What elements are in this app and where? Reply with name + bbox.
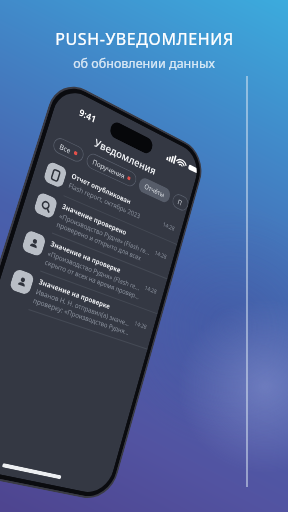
button[interactable]: Notification type xyxy=(31,151,185,244)
staticText: проверено и открыто для всех xyxy=(55,220,142,262)
staticText: Все xyxy=(58,141,73,156)
staticText: Иванов Н. Н. отправил(а) значение на xyxy=(35,287,133,329)
staticText: Значение на проверке xyxy=(49,239,122,276)
staticText: Отчет опубликован xyxy=(70,171,132,207)
staticText: 14:28 xyxy=(154,249,168,261)
staticText: Значение проверено xyxy=(61,202,128,238)
staticText: Предприятия xyxy=(177,197,184,208)
button[interactable]: Поручения xyxy=(85,151,138,189)
other: Notification type xyxy=(15,275,30,290)
staticText: «Производство Рудня» (Flash report) xyxy=(58,211,153,258)
staticText: об обновлении данных xyxy=(73,55,215,72)
staticText: Уведомления xyxy=(93,135,158,178)
staticText: 14:28 xyxy=(162,220,176,233)
staticText: Значение на проверке xyxy=(37,277,111,312)
other: Notification type xyxy=(39,198,53,214)
staticText: 14:28 xyxy=(133,319,148,331)
staticText: скрыто от всех на время проверки xyxy=(44,257,141,301)
staticText: «Производство Рудня» (Flash report) xyxy=(46,249,143,293)
other: Notification type xyxy=(48,167,63,183)
button[interactable]: Notification type xyxy=(19,182,177,278)
staticText: 9:41 xyxy=(78,106,97,126)
button[interactable]: Предприятия xyxy=(171,192,190,213)
staticText: Flash report, октябрь 2023 xyxy=(67,181,141,220)
button[interactable]: Notification type xyxy=(7,220,167,313)
staticText: Поручения xyxy=(91,157,126,181)
button[interactable]: Notification type xyxy=(0,259,157,349)
other: Notification type xyxy=(27,236,42,252)
staticText: проверку: «Производство Рудня» (Fla… xyxy=(32,296,130,337)
button[interactable]: Все xyxy=(51,135,86,164)
button[interactable]: Отчёты xyxy=(137,176,172,204)
staticText: Отчёты xyxy=(143,181,166,199)
staticText: 14:28 xyxy=(144,284,158,296)
staticText: PUSH-УВЕДОМЛЕНИЯ xyxy=(55,28,234,50)
